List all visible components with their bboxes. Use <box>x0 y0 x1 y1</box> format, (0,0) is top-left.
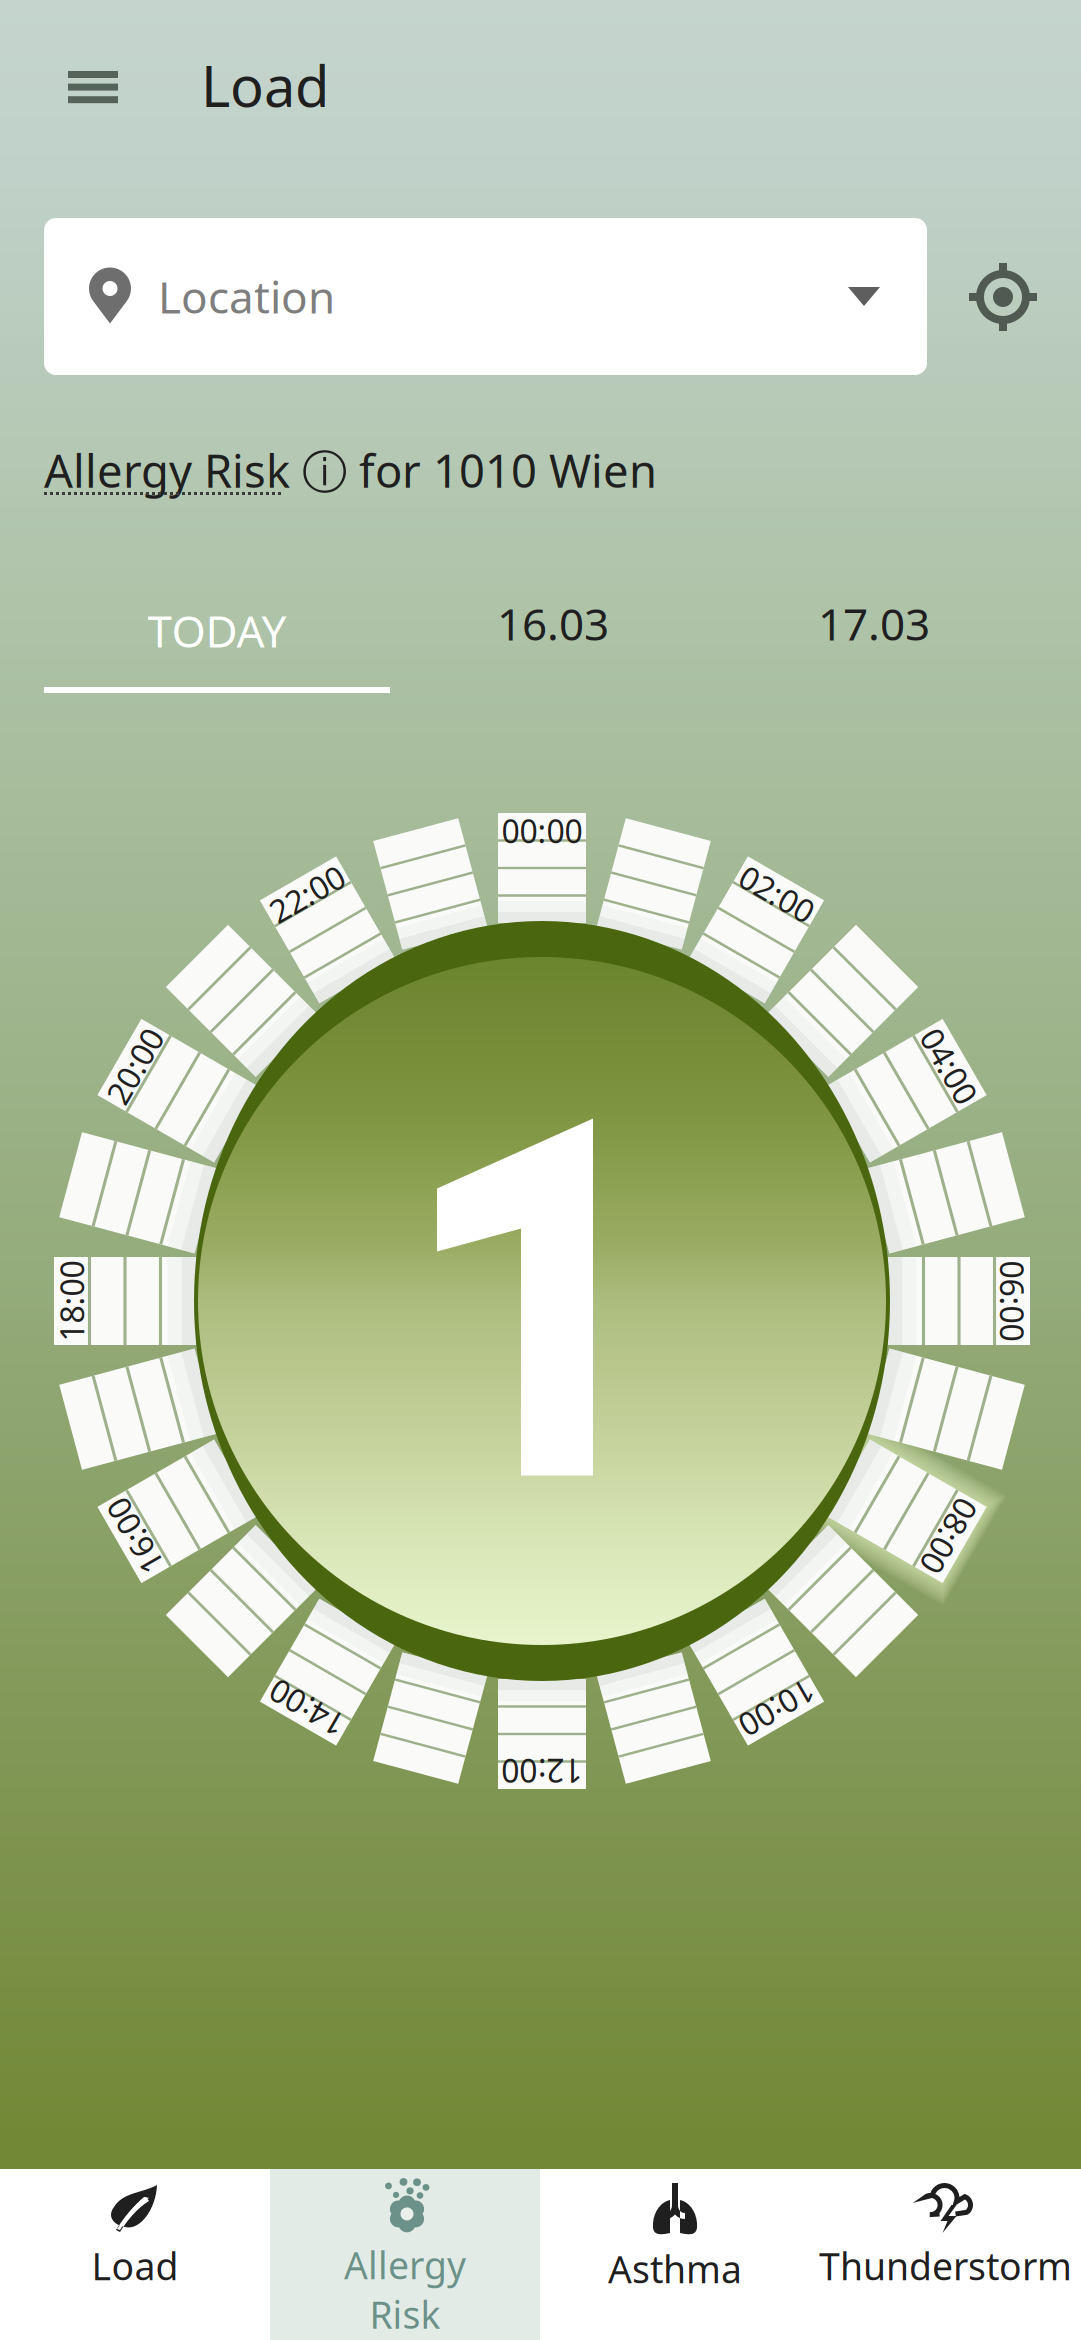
staticText: 02:00 <box>501 810 582 852</box>
button[interactable]: Load <box>0 2169 270 2340</box>
staticText: Allergy <box>344 2240 466 2289</box>
button[interactable]: TODAY <box>44 574 390 693</box>
staticText: Allergy Risk ⓘ for 1010 Wien <box>44 440 657 500</box>
button[interactable]: 17.03 <box>719 574 1029 673</box>
staticText: Risk <box>369 2289 440 2339</box>
staticText: 20:00 <box>501 810 582 852</box>
staticText: 12:00 <box>501 810 582 852</box>
button[interactable]: Asthma <box>540 2169 810 2340</box>
staticText: 14:00 <box>501 810 582 852</box>
staticText: 08:00 <box>501 810 582 852</box>
staticText: 06:00 <box>501 810 582 852</box>
staticText: Load <box>201 48 329 122</box>
staticText: 16.03 <box>497 594 609 653</box>
button[interactable]: Allergy <box>270 2169 540 2340</box>
button[interactable]: Thunderstorm <box>810 2169 1081 2340</box>
staticText: Asthma <box>608 2244 742 2294</box>
staticText: 18:00 <box>501 810 582 852</box>
staticText: Location <box>158 267 335 326</box>
staticText: 10:00 <box>501 810 582 852</box>
staticText: Thunderstorm <box>819 2241 1072 2291</box>
button[interactable]: Location <box>44 218 927 375</box>
button[interactable]: 16.03 <box>398 574 708 673</box>
staticText: 16:00 <box>501 810 582 852</box>
staticText: 17.03 <box>818 594 930 653</box>
staticText: 22:00 <box>501 810 582 852</box>
staticText: 04:00 <box>501 810 582 852</box>
staticText: TODAY <box>147 601 286 660</box>
staticText: Load <box>91 2241 178 2291</box>
button[interactable]: Use current location <box>951 245 1055 349</box>
button[interactable]: Menu <box>38 32 148 142</box>
staticText: 00:00 <box>501 810 582 852</box>
